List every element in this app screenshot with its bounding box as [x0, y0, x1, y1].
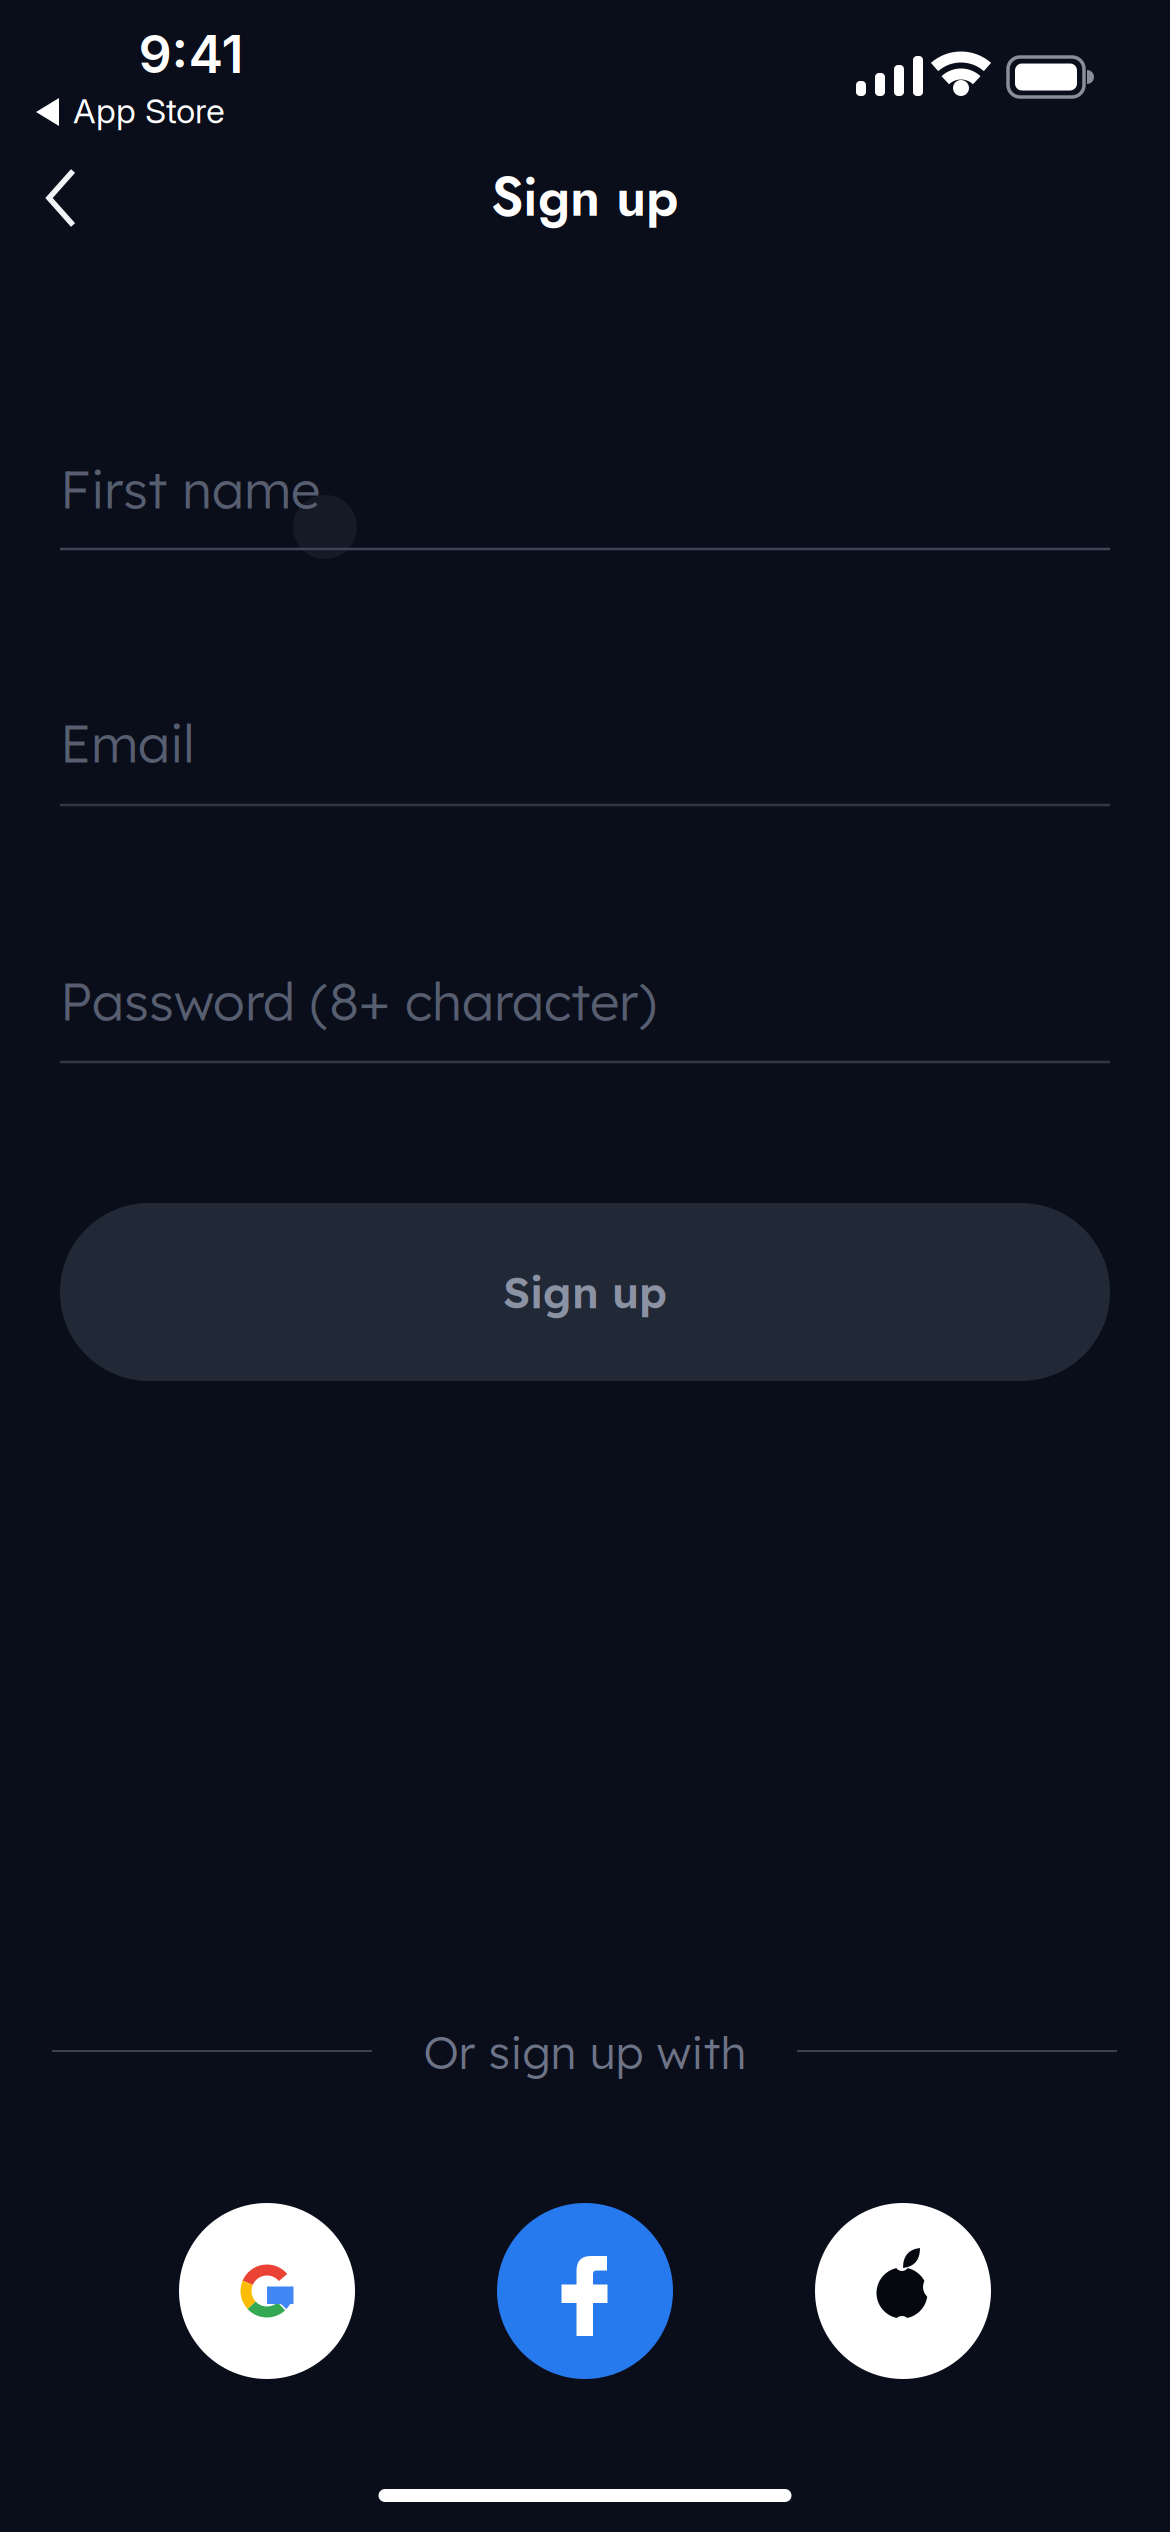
staticText: App Store — [73, 90, 225, 131]
staticText: Sign up — [503, 1265, 667, 1319]
staticText: 9:41 — [138, 22, 243, 85]
staticText: Email — [60, 710, 195, 775]
button[interactable]: App Store — [26, 83, 246, 139]
button[interactable]: Sign up with Facebook — [497, 2203, 673, 2379]
staticText: Or sign up with — [423, 2024, 746, 2080]
button[interactable]: Sign up with Google — [179, 2203, 355, 2379]
button[interactable]: Sign up with Apple — [815, 2203, 991, 2379]
staticText: Password (8+ character) — [60, 968, 657, 1033]
button[interactable]: Sign up — [60, 1203, 1110, 1381]
staticText: Sign up — [491, 158, 679, 236]
button[interactable]: Back — [16, 153, 106, 243]
staticText: First name — [60, 456, 320, 521]
